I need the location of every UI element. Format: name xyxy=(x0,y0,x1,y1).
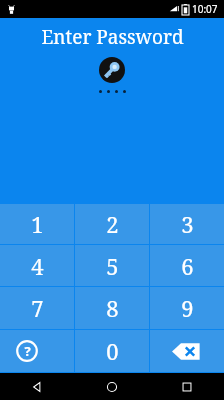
button[interactable]: 5 xyxy=(75,245,149,286)
button[interactable]: Help xyxy=(0,330,74,372)
button[interactable]: Backspace xyxy=(150,330,224,372)
staticText: 7 xyxy=(31,293,44,323)
staticText: 9 xyxy=(181,293,194,323)
button[interactable]: 4 xyxy=(0,245,74,286)
staticText: 5 xyxy=(106,251,119,281)
staticText: 10:07 xyxy=(192,2,218,16)
staticText: 0 xyxy=(106,336,119,366)
button[interactable]: 3 xyxy=(150,204,224,244)
button[interactable]: 2 xyxy=(75,204,149,244)
button[interactable]: Recents xyxy=(149,373,224,400)
staticText: Enter Password xyxy=(41,24,184,50)
button[interactable]: Back xyxy=(0,373,74,400)
button[interactable]: 1 xyxy=(0,204,74,244)
button[interactable]: Home xyxy=(74,373,149,400)
staticText: 1 xyxy=(31,209,44,239)
button[interactable]: 0 xyxy=(75,330,149,372)
button[interactable]: 7 xyxy=(0,287,74,329)
staticText: 3 xyxy=(181,209,194,239)
button[interactable]: 9 xyxy=(150,287,224,329)
staticText: 2 xyxy=(106,209,119,239)
staticText: ? xyxy=(24,342,31,360)
button[interactable]: 8 xyxy=(75,287,149,329)
staticText: 8 xyxy=(106,293,119,323)
staticText: 4 xyxy=(31,251,44,281)
button[interactable]: 6 xyxy=(150,245,224,286)
staticText: 6 xyxy=(181,251,194,281)
